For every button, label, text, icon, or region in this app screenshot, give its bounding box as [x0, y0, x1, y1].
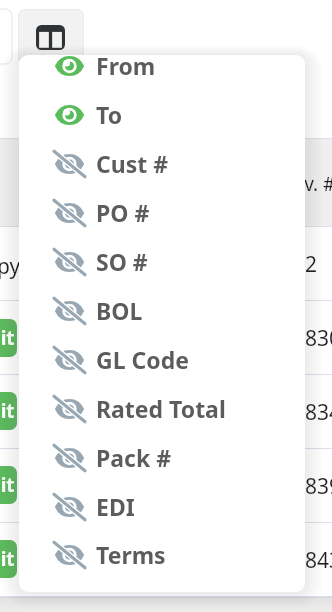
staticText: Copy [0, 252, 21, 281]
button[interactable]: Choose columns [18, 9, 84, 64]
button[interactable]: Cust # [19, 139, 305, 188]
staticText: SO # [96, 246, 148, 277]
button[interactable]: BOL [19, 286, 305, 335]
staticText: 2 [305, 250, 318, 279]
button[interactable]: Filter [0, 9, 12, 64]
staticText: PO # [96, 197, 150, 228]
staticText: Rated Total [96, 393, 226, 424]
staticText: 84343 [305, 546, 332, 575]
button[interactable]: Edit [0, 540, 17, 578]
staticText: Inv. # [286, 171, 332, 197]
staticText: 83427 [305, 398, 332, 427]
button[interactable]: Edit [0, 319, 17, 357]
staticText: Edit [0, 546, 15, 572]
staticText: Edit [0, 472, 15, 498]
button[interactable]: Edit [0, 392, 17, 430]
button[interactable]: Rated Total [19, 384, 305, 433]
button[interactable]: SO # [19, 237, 305, 286]
staticText: Cust # [96, 148, 169, 179]
staticText: Edit [0, 325, 15, 351]
button[interactable]: To [19, 90, 305, 139]
staticText: 83991 [305, 472, 332, 501]
button[interactable]: Pack # [19, 433, 305, 482]
staticText: Terms [96, 539, 166, 570]
staticText: From [96, 55, 156, 81]
button[interactable]: Edit [0, 466, 17, 504]
button[interactable]: PO # [19, 188, 305, 237]
button[interactable]: From [19, 55, 305, 90]
button[interactable]: GL Code [19, 335, 305, 384]
button[interactable]: Terms [19, 531, 305, 578]
button[interactable]: EDI [19, 482, 305, 531]
staticText: To [96, 99, 123, 130]
staticText: BOL [96, 295, 143, 326]
staticText: Edit [0, 398, 15, 424]
staticText: EDI [96, 491, 135, 522]
staticText: Pack # [96, 442, 172, 473]
staticText: GL Code [96, 344, 189, 375]
staticText: 83015 [305, 324, 332, 353]
